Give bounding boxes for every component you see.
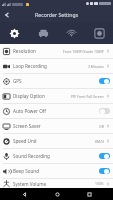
button[interactable]: Recents (81, 188, 97, 200)
button[interactable]: On (99, 153, 110, 159)
button[interactable]: Beep Sound (0, 164, 113, 178)
staticText: Sound Recording (13, 153, 99, 159)
button[interactable]: Screen Saver (0, 119, 113, 133)
staticText: PIP Front Full Screen (71, 94, 104, 99)
button[interactable]: Resolution (0, 44, 113, 58)
button[interactable]: Wi-Fi (57, 22, 85, 44)
staticText: Display Option (13, 93, 71, 99)
staticText: Front 1080P/Inside 1080P (63, 49, 104, 54)
button[interactable]: Car (29, 22, 57, 44)
staticText: KM/H (95, 139, 104, 144)
button[interactable]: Back (0, 8, 14, 22)
staticText: 3 Minutes (88, 64, 104, 69)
button[interactable]: System Volume (0, 179, 113, 188)
button[interactable]: Display Option (0, 89, 113, 103)
button[interactable]: Speed Unit (0, 134, 113, 148)
button[interactable]: Camera (85, 22, 113, 44)
staticText: Resolution (13, 48, 63, 54)
button[interactable]: Back (16, 188, 32, 200)
button[interactable]: GPS (0, 74, 113, 88)
staticText: Screen Saver (13, 123, 99, 129)
button[interactable]: Home (49, 188, 65, 200)
staticText: Off (99, 124, 104, 129)
button[interactable]: Loop Recording (0, 59, 113, 73)
staticText: System Volume (13, 181, 95, 187)
button[interactable]: Off (99, 108, 110, 114)
staticText: 100% (95, 181, 104, 186)
button[interactable]: Sound Recording (0, 149, 113, 163)
staticText: Speed Unit (13, 138, 95, 144)
staticText: Loop Recording (13, 63, 88, 69)
button[interactable]: On (99, 78, 110, 84)
button[interactable]: Settings (0, 22, 29, 44)
staticText: Recorder Settings (35, 11, 79, 18)
button[interactable]: On (99, 168, 110, 174)
staticText: Beep Sound (13, 168, 99, 174)
staticText: GPS (13, 78, 99, 84)
button[interactable]: Auto Power Off (0, 104, 113, 118)
staticText: Auto Power Off (13, 108, 99, 114)
